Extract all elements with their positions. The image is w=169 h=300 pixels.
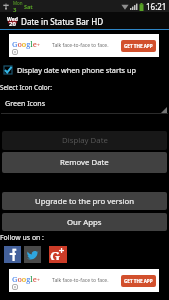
- staticText: Green Icons: [5, 98, 46, 108]
- staticText: 20: [9, 20, 16, 28]
- button[interactable]: Twitter: [24, 246, 41, 263]
- staticText: Google+: [12, 39, 41, 49]
- staticText: Talk face-to-face to face.: [52, 277, 109, 284]
- staticText: Select Icon Color:: [0, 83, 52, 92]
- staticText: Remove Date: [60, 157, 109, 168]
- button[interactable]: Display Date: [2, 131, 167, 150]
- button[interactable]: Upgrade to the pro version: [2, 192, 167, 210]
- button[interactable]: Facebook: [4, 246, 21, 263]
- button[interactable]: Google+: [9, 34, 159, 57]
- button[interactable]: Google Plus: [49, 246, 67, 263]
- staticText: Display date when phone starts up: [17, 65, 136, 75]
- staticText: GET THE APP: [124, 43, 153, 49]
- staticText: Date in Status Bar HD: [21, 16, 104, 27]
- button[interactable]: Remove Date: [2, 152, 167, 173]
- button[interactable]: GET THE APP: [121, 40, 156, 52]
- staticText: G: [50, 247, 61, 260]
- staticText: Google+: [12, 274, 41, 284]
- button[interactable]: Green Icons: [0, 96, 169, 114]
- staticText: Sat: [24, 3, 33, 10]
- staticText: GET THE APP: [124, 278, 153, 284]
- button[interactable]: Our Apps: [2, 213, 167, 231]
- staticText: Follow us on :: [0, 233, 44, 242]
- staticText: 3: [13, 6, 17, 12]
- staticText: Our Apps: [67, 217, 102, 228]
- staticText: Upgrade to the pro version: [35, 196, 135, 207]
- staticText: Mon: [13, 0, 23, 6]
- button[interactable]: Display date when phone starts up: [0, 63, 169, 77]
- button[interactable]: Google+: [9, 269, 159, 292]
- staticText: Talk face-to-face to face.: [52, 42, 109, 49]
- button[interactable]: GET THE APP: [121, 275, 156, 287]
- staticText: 16:21: [146, 1, 167, 12]
- staticText: Display Date: [62, 135, 108, 146]
- staticText: Wed: [7, 16, 18, 23]
